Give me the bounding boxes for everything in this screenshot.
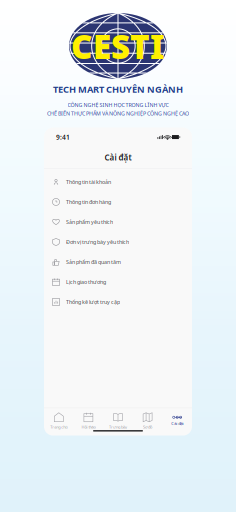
button[interactable]: Trưng bày: [103, 413, 133, 430]
button[interactable]: Thông tin tài khoản: [44, 172, 192, 192]
button[interactable]: Sản phẩm đã quan tâm: [44, 252, 192, 272]
staticText: TECH MART CHUYÊN NGÀNH: [53, 83, 183, 95]
staticText: Trang chủ: [50, 424, 67, 430]
staticText: CÔNG NGHỆ SINH HỌC TRONG LĨNH VỰC: [67, 101, 168, 108]
button[interactable]: Lịch giao thương: [44, 272, 192, 292]
button[interactable]: Sản phẩm yêu thích: [44, 212, 192, 232]
staticText: Hội thảo: [81, 424, 95, 430]
staticText: CHẾ BIẾN THỰC PHẨM VÀ NÔNG NGHIỆP CÔNG N…: [47, 110, 189, 117]
staticText: Thông tin tài khoản: [66, 178, 111, 185]
staticText: Sản phẩm đã quan tâm: [66, 258, 121, 265]
staticText: 9:41: [56, 133, 70, 141]
button[interactable]: Thông tin đơn hàng: [44, 192, 192, 212]
button[interactable]: Thống kê lượt truy cập: [44, 292, 192, 312]
staticText: Đơn vị trưng bày yêu thích: [66, 238, 129, 245]
button[interactable]: Trang chủ: [44, 413, 74, 430]
button[interactable]: Đơn vị trưng bày yêu thích: [44, 232, 192, 252]
button[interactable]: Hội thảo: [74, 413, 103, 430]
staticText: Lịch giao thương: [66, 278, 106, 285]
staticText: Thống kê lượt truy cập: [66, 298, 120, 305]
staticText: Trưng bày: [109, 424, 127, 430]
staticText: Sản phẩm yêu thích: [66, 218, 113, 225]
staticText: Cài đặt: [171, 421, 183, 426]
staticText: Thông tin đơn hàng: [66, 198, 111, 205]
button[interactable]: Cài đặt: [162, 416, 192, 426]
button[interactable]: Sơ đồ: [133, 413, 162, 430]
staticText: CESTI: [71, 24, 165, 68]
staticText: Sơ đồ: [143, 424, 152, 430]
staticText: Cài đặt: [104, 152, 131, 163]
